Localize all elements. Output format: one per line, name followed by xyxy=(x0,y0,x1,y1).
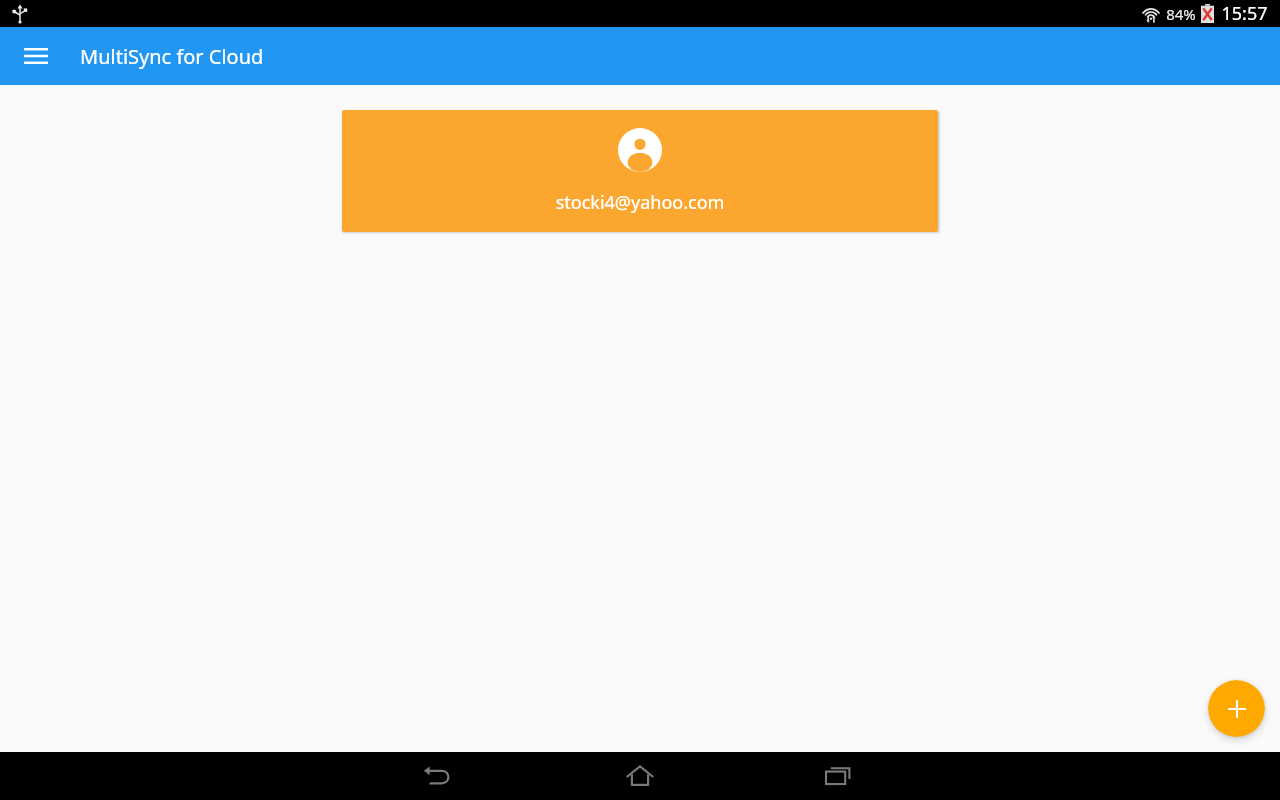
staticText: stocki4@yahoo.com xyxy=(342,190,938,215)
button[interactable]: stocki4@yahoo.com xyxy=(342,110,938,232)
button[interactable]: Home xyxy=(600,752,680,800)
button[interactable]: Recent apps xyxy=(798,752,878,800)
button[interactable]: Add account xyxy=(1208,680,1265,737)
staticText: 84% xyxy=(1166,4,1196,24)
staticText: MultiSync for Cloud xyxy=(80,43,264,70)
staticText: 15:57 xyxy=(1221,1,1268,26)
button[interactable]: Open navigation drawer xyxy=(12,32,60,80)
button[interactable]: Back xyxy=(398,752,478,800)
